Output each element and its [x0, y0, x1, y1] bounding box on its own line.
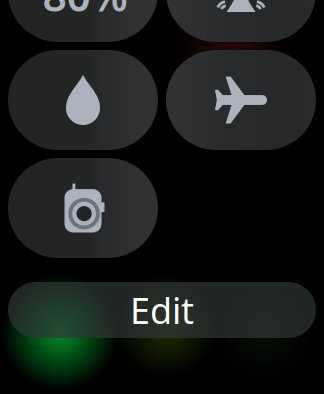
button[interactable]: Edit: [8, 282, 316, 338]
button[interactable]: Airplane Mode: [166, 50, 316, 150]
staticText: 80%: [42, 0, 127, 23]
staticText: Edit: [130, 286, 194, 334]
button[interactable]: Water Lock: [8, 50, 158, 150]
button[interactable]: Silent Mode: [166, 0, 316, 42]
button[interactable]: Walkie-Talkie: [8, 158, 158, 258]
button[interactable]: Battery 80 percent: [8, 0, 158, 42]
